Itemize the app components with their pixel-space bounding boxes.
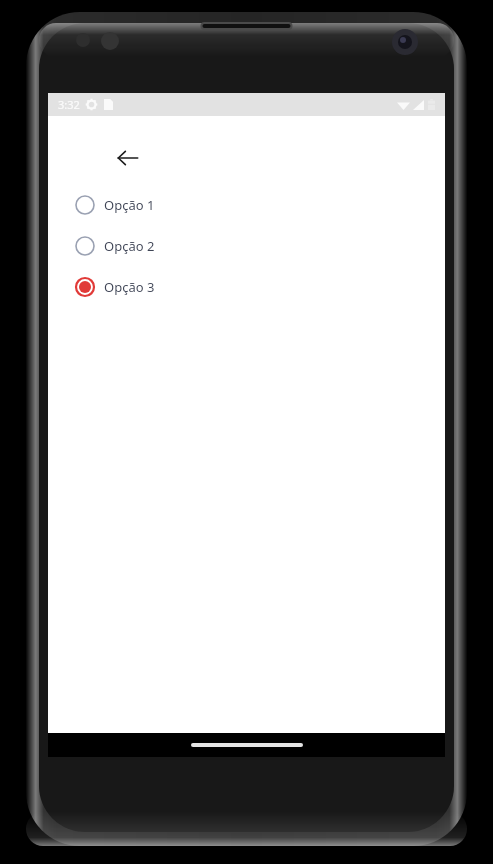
staticText: Opção 1 <box>104 196 155 214</box>
staticText: Opção 3 <box>104 278 155 296</box>
staticText: Opção 2 <box>104 237 155 255</box>
button[interactable]: Opção 1 <box>48 184 445 225</box>
button[interactable]: Opção 2 <box>48 225 445 266</box>
button[interactable]: Opção 3 <box>48 266 445 307</box>
button[interactable]: Back <box>110 140 146 176</box>
staticText: 3:32 <box>58 97 80 112</box>
